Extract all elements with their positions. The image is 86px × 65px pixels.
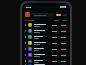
button[interactable] — [22, 40, 70, 46]
button[interactable] — [22, 52, 70, 58]
button[interactable]: Profile — [25, 12, 30, 17]
button[interactable] — [22, 22, 70, 28]
button[interactable] — [22, 46, 70, 52]
button[interactable] — [22, 34, 70, 40]
button[interactable]: More — [63, 14, 67, 16]
button[interactable]: Filter — [56, 14, 61, 16]
button[interactable] — [22, 64, 70, 65]
button[interactable] — [22, 28, 70, 34]
button[interactable] — [22, 58, 70, 64]
button[interactable] — [32, 13, 54, 17]
